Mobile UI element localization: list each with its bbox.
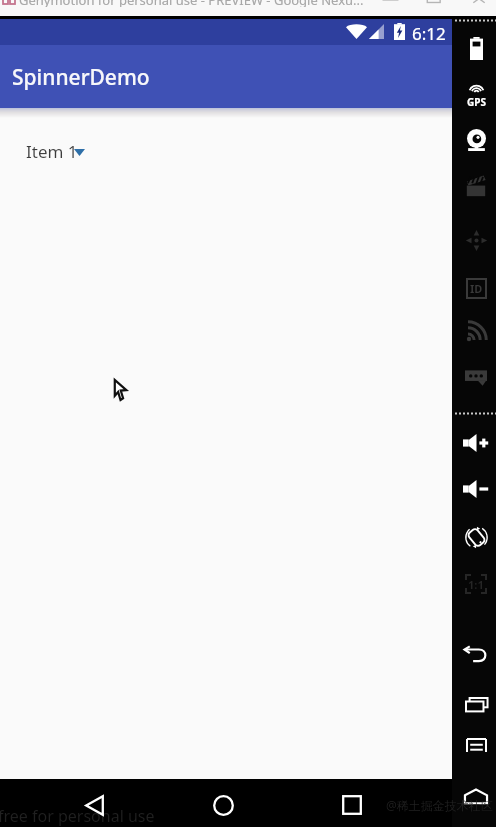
staticText: free for personal use	[0, 805, 155, 827]
button[interactable]: Sidebar action	[454, 772, 496, 820]
button[interactable]: Sidebar action	[454, 353, 496, 401]
button[interactable]: Sidebar action	[454, 264, 496, 312]
button[interactable]: Home	[203, 785, 243, 825]
button[interactable]: Sidebar action	[454, 513, 496, 561]
button[interactable]: Sidebar action	[454, 419, 496, 467]
button[interactable]: Sidebar action	[454, 680, 496, 728]
button[interactable]: Back	[74, 785, 114, 825]
button[interactable]: Sidebar action	[454, 116, 496, 164]
button[interactable]: Sidebar action	[454, 216, 496, 264]
staticText: SpinnerDemo	[12, 63, 150, 92]
button[interactable]: Sidebar action	[454, 307, 496, 355]
button[interactable]: Sidebar action	[454, 465, 496, 513]
other: App logo	[2, 0, 16, 7]
button[interactable]: Item 1	[26, 140, 89, 163]
staticText: ID	[470, 281, 483, 296]
button[interactable]: Sidebar action	[454, 630, 496, 678]
button[interactable]: Recent apps	[332, 785, 372, 825]
staticText: 1:1	[468, 577, 484, 592]
button[interactable]: Sidebar action	[454, 560, 496, 608]
staticText: @稀土掘金技术社区	[386, 797, 493, 813]
button[interactable]: Sidebar action	[454, 162, 496, 210]
button[interactable]: Sidebar action	[454, 24, 496, 72]
button[interactable]: Close	[466, 0, 492, 6]
button[interactable]: Sidebar action	[454, 70, 496, 118]
button[interactable]: Minimize	[374, 0, 408, 6]
button[interactable]: Maximize	[420, 0, 448, 6]
staticText: Item 1	[26, 140, 78, 163]
staticText: Genymotion for personal use - PREVIEW - …	[19, 0, 364, 7]
button[interactable]: Sidebar action	[454, 721, 496, 769]
staticText: 6:12	[412, 22, 446, 45]
staticText: GPS	[467, 95, 486, 109]
